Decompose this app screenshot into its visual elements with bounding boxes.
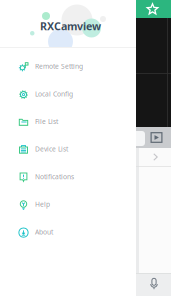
button[interactable]: Favorites [146,2,159,15]
button[interactable]: Local Config [0,81,136,108]
staticText: Device List [35,145,68,153]
button[interactable]: File List [0,108,136,136]
staticText: Local Config [35,89,73,98]
button[interactable]: Help [0,191,136,219]
staticText: RXCamview [40,19,101,33]
staticText: Notifications [35,172,74,181]
button[interactable]: Playback [150,131,163,144]
button[interactable]: Device List [0,136,136,164]
button[interactable]: Microphone [149,278,159,291]
button[interactable]: Open [136,148,171,166]
staticText: About [35,227,53,236]
staticText: Remote Setting [35,62,83,71]
button[interactable]: Remote Setting [0,53,136,81]
staticText: Help [35,200,50,209]
button[interactable]: About [0,219,136,246]
button[interactable]: Notifications [0,164,136,191]
staticText: File List [35,117,58,126]
